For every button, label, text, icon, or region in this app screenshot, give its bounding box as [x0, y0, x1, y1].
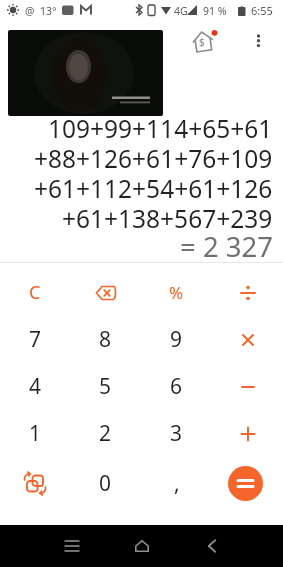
button[interactable]: 9 — [141, 316, 212, 363]
button[interactable]: 4 — [0, 363, 70, 410]
staticText: 5 — [99, 372, 112, 401]
button[interactable] — [70, 269, 141, 316]
staticText: 8 — [99, 325, 112, 354]
staticText: 3 — [170, 419, 183, 448]
staticText: 0 — [99, 469, 112, 498]
staticText: % — [169, 281, 184, 304]
button[interactable]: 3 — [141, 410, 212, 457]
staticText: 13° — [40, 4, 57, 18]
button[interactable] — [177, 525, 247, 567]
button[interactable]: 1 — [0, 410, 70, 457]
staticText: 4G — [174, 4, 188, 18]
button[interactable] — [212, 410, 283, 457]
button[interactable]: 7 — [0, 316, 70, 363]
staticText: +61+138+567+239 — [62, 202, 273, 232]
staticText: +88+126+61+76+109 — [34, 142, 273, 172]
button[interactable]: 2 — [70, 410, 141, 457]
button[interactable]: 8 — [70, 316, 141, 363]
staticText: 109+99+114+65+61 — [48, 112, 273, 142]
button[interactable] — [212, 363, 283, 410]
staticText: 6:55 — [251, 3, 273, 18]
button[interactable] — [212, 316, 283, 363]
button[interactable]: $ — [188, 27, 222, 57]
button[interactable]: % — [141, 269, 212, 316]
button[interactable]: 0 — [70, 457, 141, 510]
staticText: @ — [25, 4, 35, 18]
staticText: 7 — [29, 325, 42, 354]
button[interactable]: , — [141, 457, 212, 510]
button[interactable] — [8, 30, 163, 116]
staticText: 6 — [170, 372, 183, 401]
button[interactable]: 5 — [70, 363, 141, 410]
staticText: $ — [199, 35, 205, 49]
button[interactable] — [248, 28, 270, 54]
staticText: 1 — [29, 419, 42, 448]
staticText: 2 — [99, 419, 112, 448]
button[interactable]: 6 — [141, 363, 212, 410]
button[interactable] — [107, 525, 177, 567]
staticText: = 2 327 — [180, 228, 273, 258]
staticText: +61+112+54+61+126 — [34, 172, 273, 202]
staticText: C — [29, 280, 41, 305]
staticText: , — [174, 469, 180, 498]
button[interactable]: C — [0, 269, 70, 316]
button[interactable] — [212, 457, 283, 510]
staticText: 4 — [29, 372, 42, 401]
button[interactable] — [0, 457, 70, 510]
staticText: 91 % — [203, 4, 227, 18]
button[interactable] — [212, 269, 283, 316]
button[interactable] — [36, 525, 107, 567]
staticText: 9 — [170, 325, 183, 354]
